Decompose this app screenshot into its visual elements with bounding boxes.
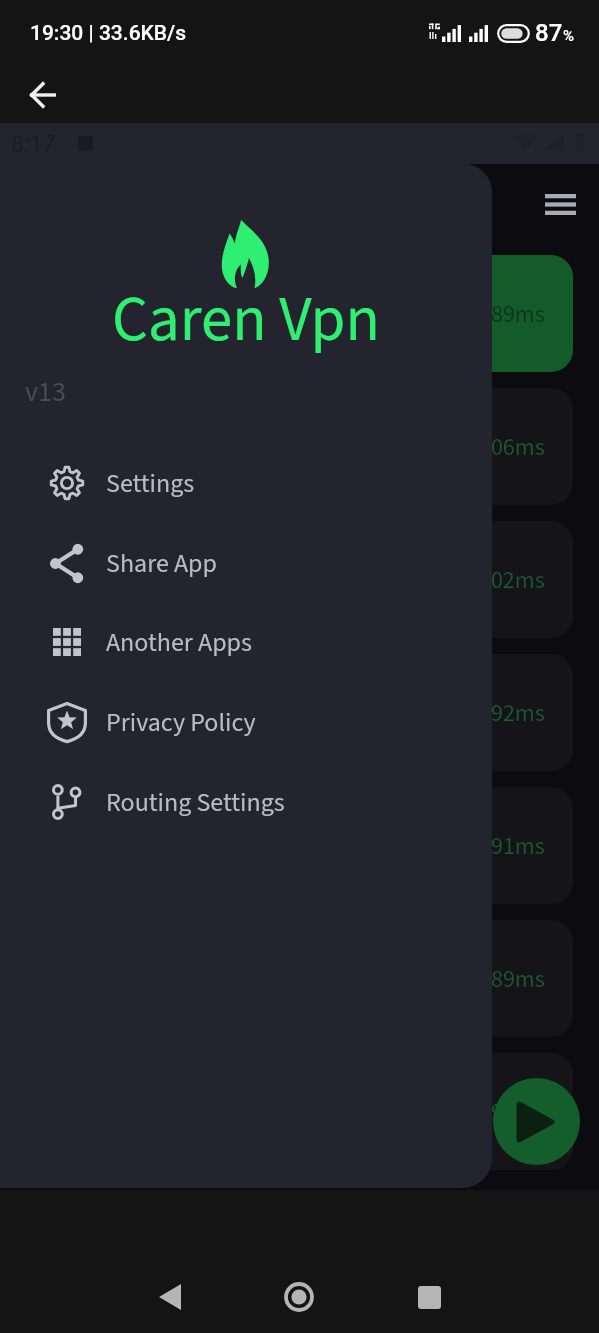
staticText: 92ms [491, 696, 545, 730]
button[interactable]: Privacy Policy [0, 689, 492, 755]
staticText: 91ms [491, 829, 545, 863]
button[interactable]: 92ms [28, 654, 573, 771]
button[interactable]: Another Apps [0, 609, 492, 675]
staticText: Settings [106, 465, 195, 502]
staticText: Caren Vpn [112, 275, 380, 365]
staticText: Another Apps [106, 624, 252, 661]
button[interactable]: 102ms [28, 521, 573, 638]
staticText: 106ms [479, 430, 545, 464]
button[interactable]: Connect [493, 1078, 580, 1165]
staticText: 89ms [491, 297, 545, 331]
button[interactable]: Share App [0, 530, 492, 596]
staticText: Routing Settings [106, 784, 285, 821]
staticText: 89ms [491, 962, 545, 996]
staticText: 19:30 | 33.6KB/s [30, 21, 187, 46]
button[interactable]: 106ms [28, 388, 573, 505]
button[interactable]: Home [269, 1267, 329, 1327]
button[interactable]: Back [18, 70, 68, 120]
staticText: 8:17 [11, 131, 56, 158]
staticText: Privacy Policy [106, 704, 256, 741]
button[interactable]: 89ms [28, 920, 573, 1037]
staticText: % [563, 27, 575, 45]
staticText: 87 [535, 19, 563, 47]
button[interactable]: Open navigation menu [534, 178, 586, 230]
button[interactable]: 89ms [28, 255, 573, 372]
button[interactable]: 95ms [28, 1053, 573, 1170]
staticText: 95ms [491, 1095, 545, 1129]
button[interactable]: 91ms [28, 787, 573, 904]
button[interactable]: Recents [399, 1267, 459, 1327]
staticText: v13 [25, 372, 66, 412]
staticText: 102ms [479, 563, 545, 597]
button[interactable]: Settings [0, 450, 492, 516]
button[interactable]: Routing Settings [0, 769, 492, 835]
button[interactable]: Back [140, 1267, 200, 1327]
staticText: Share App [106, 545, 217, 582]
